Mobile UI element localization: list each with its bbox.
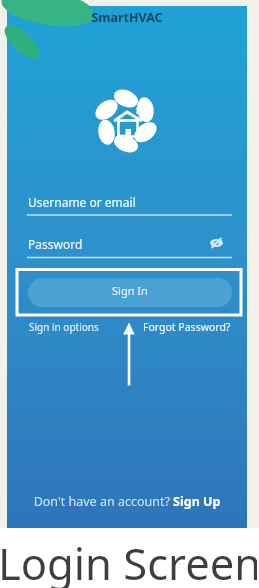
button[interactable]: Don't have an account? Sign Up — [7, 493, 247, 510]
staticText: Sign In — [112, 283, 148, 298]
staticText: Login Screen — [0, 533, 257, 588]
button[interactable]: Forgot Password? — [143, 320, 231, 334]
button[interactable]: Sign In — [28, 278, 232, 307]
staticText: Password — [28, 236, 83, 252]
button[interactable]: Sign in options — [29, 320, 99, 334]
staticText: SmartHVAC — [7, 9, 247, 26]
staticText: Username or email — [28, 194, 136, 210]
